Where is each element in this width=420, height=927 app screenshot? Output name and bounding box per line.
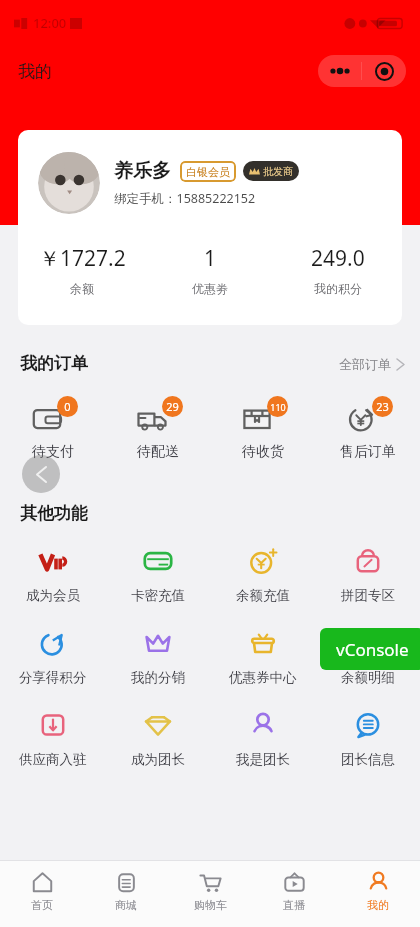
button[interactable]: 卡密充值	[105, 546, 210, 604]
button[interactable]: 成为会员	[0, 546, 105, 604]
staticText: 待支付	[32, 443, 74, 461]
staticText: 优惠劵	[192, 281, 228, 296]
staticText: 供应商入驻	[19, 751, 87, 768]
button[interactable]: 分享得积分	[0, 628, 105, 686]
button[interactable]: 拼团专区	[315, 546, 420, 604]
staticText: 白银会员	[186, 165, 230, 179]
staticText: 卡密充值	[131, 587, 185, 604]
staticText: 全部订单	[339, 356, 391, 372]
staticText: 我的积分	[314, 281, 362, 296]
button[interactable]: ￥1727.2	[18, 244, 146, 296]
button[interactable]: 白银会员	[186, 161, 230, 182]
staticText: 绑定手机：15885222152	[114, 190, 256, 207]
staticText: 12:00	[33, 14, 67, 32]
staticText: 29	[166, 399, 179, 414]
button[interactable]: Back	[22, 455, 60, 493]
staticText: 0	[64, 399, 71, 414]
staticText: 拼团专区	[341, 587, 395, 604]
staticText: 待配送	[137, 443, 179, 461]
button[interactable]: 养乐多	[18, 130, 402, 325]
staticText: 我的	[18, 61, 52, 82]
staticText: 其他功能	[20, 503, 88, 524]
button[interactable]: 23	[315, 396, 420, 461]
staticText: 余额	[70, 281, 94, 296]
staticText: 249.0	[311, 244, 365, 273]
button[interactable]: 供应商入驻	[0, 710, 105, 768]
staticText: 我的分销	[131, 669, 185, 686]
button[interactable]: 购物车	[168, 861, 252, 921]
button[interactable]: 批发商	[249, 161, 293, 181]
button[interactable]: 249.0	[274, 244, 402, 296]
staticText: 直播	[283, 898, 305, 912]
staticText: 成为会员	[26, 587, 80, 604]
button[interactable]: 团长信息	[315, 710, 420, 768]
staticText: 待收货	[242, 443, 284, 461]
staticText: 23	[376, 399, 389, 414]
button[interactable]: 成为团长	[105, 710, 210, 768]
button[interactable]: 全部订单	[339, 356, 404, 372]
staticText: ￥1727.2	[39, 244, 126, 273]
staticText: 成为团长	[131, 751, 185, 768]
staticText: 110	[270, 401, 286, 413]
button[interactable]: 我的分销	[105, 628, 210, 686]
staticText: 批发商	[263, 165, 293, 178]
staticText: 商城	[115, 898, 137, 912]
button[interactable]: 0	[0, 396, 105, 461]
button[interactable]: 优惠券中心	[210, 628, 315, 686]
staticText: 售后订单	[340, 443, 396, 461]
staticText: 首页	[31, 898, 53, 912]
staticText: 我是团长	[236, 751, 290, 768]
staticText: 购物车	[194, 898, 227, 912]
staticText: 团长信息	[341, 751, 395, 768]
button[interactable]: 29	[105, 396, 210, 461]
staticText: vConsole	[336, 638, 409, 661]
button[interactable]: 110	[210, 396, 315, 461]
button[interactable]: vConsole	[320, 628, 420, 670]
staticText: 我的	[367, 898, 389, 912]
button[interactable]: 1	[146, 244, 274, 296]
button[interactable]: 余额明细	[315, 628, 420, 686]
staticText: 养乐多	[114, 159, 171, 183]
button[interactable]: 首页	[0, 861, 84, 921]
button[interactable]: 直播	[252, 861, 336, 921]
button[interactable]: 商城	[84, 861, 168, 921]
staticText: 我的订单	[20, 353, 88, 374]
button[interactable]: 我的	[336, 861, 420, 921]
button[interactable]: 余额充值	[210, 546, 315, 604]
staticText: 余额充值	[236, 587, 290, 604]
staticText: 分享得积分	[19, 669, 87, 686]
button[interactable]: 我是团长	[210, 710, 315, 768]
staticText: 优惠券中心	[229, 669, 297, 686]
staticText: 余额明细	[341, 669, 395, 686]
staticText: 1	[204, 244, 217, 273]
button[interactable]: More options	[318, 55, 406, 87]
